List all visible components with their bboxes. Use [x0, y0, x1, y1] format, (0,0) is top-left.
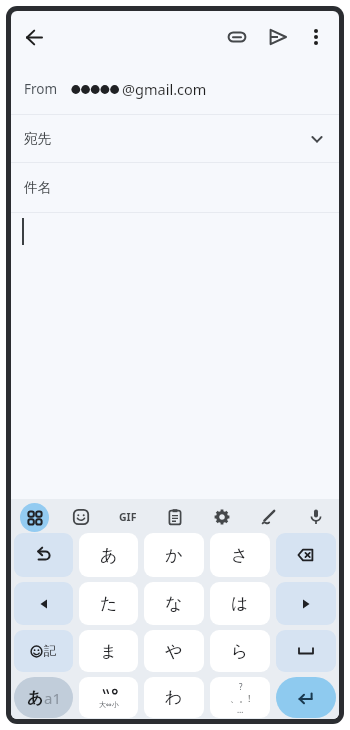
button[interactable]: [151, 501, 198, 533]
button[interactable]: わ: [144, 677, 204, 718]
staticText: 大⇔小: [99, 700, 119, 709]
button[interactable]: 記: [14, 630, 73, 672]
button[interactable]: [166, 508, 184, 526]
button[interactable]: [20, 503, 49, 532]
button[interactable]: [198, 501, 245, 533]
button[interactable]: [11, 213, 339, 499]
button[interactable]: 大⇔小: [79, 677, 138, 718]
button[interactable]: た: [79, 582, 138, 625]
staticText: …: [237, 704, 244, 715]
button[interactable]: [260, 508, 278, 526]
staticText: 宛先: [24, 130, 51, 147]
staticText: ら: [231, 641, 249, 662]
button[interactable]: [11, 501, 57, 533]
staticText: ま: [100, 641, 118, 662]
button[interactable]: [276, 533, 336, 577]
staticText: さ: [231, 545, 249, 566]
button[interactable]: [227, 27, 247, 47]
button[interactable]: ら: [210, 630, 270, 672]
button[interactable]: [276, 582, 336, 625]
staticText: は: [231, 593, 249, 614]
staticText: ?: [239, 681, 243, 692]
button[interactable]: 件名: [11, 163, 339, 212]
button[interactable]: [292, 501, 339, 533]
staticText: From: [24, 80, 58, 98]
staticText: あ: [100, 545, 118, 566]
button[interactable]: あ: [79, 533, 138, 577]
staticText: わ: [165, 687, 183, 708]
staticText: @gmail.com: [122, 79, 207, 99]
button[interactable]: [268, 27, 288, 47]
button[interactable]: か: [144, 533, 204, 577]
button[interactable]: [245, 501, 292, 533]
button[interactable]: 宛先: [11, 115, 339, 162]
button[interactable]: ?: [210, 677, 270, 718]
button[interactable]: [276, 630, 336, 672]
button[interactable]: [14, 582, 73, 625]
button[interactable]: [25, 28, 44, 47]
staticText: な: [165, 593, 183, 614]
button[interactable]: や: [144, 630, 204, 672]
staticText: GIF: [119, 510, 137, 524]
staticText: a1: [44, 688, 61, 708]
staticText: 件名: [24, 179, 51, 196]
button[interactable]: From: [11, 63, 339, 114]
button[interactable]: [306, 27, 326, 47]
staticText: た: [100, 593, 118, 614]
button[interactable]: [14, 533, 73, 577]
button[interactable]: [309, 131, 325, 147]
button[interactable]: ま: [79, 630, 138, 672]
button[interactable]: は: [210, 582, 270, 625]
staticText: か: [165, 545, 183, 566]
button[interactable]: さ: [210, 533, 270, 577]
staticText: あ: [27, 688, 44, 708]
button[interactable]: [72, 508, 90, 526]
staticText: 記: [44, 643, 57, 659]
button[interactable]: [213, 508, 231, 526]
button[interactable]: [276, 677, 336, 718]
button[interactable]: な: [144, 582, 204, 625]
staticText: や: [165, 641, 183, 662]
button[interactable]: [57, 501, 104, 533]
button[interactable]: あ: [14, 677, 73, 718]
staticText: 、。!: [230, 692, 251, 704]
button[interactable]: GIF: [104, 501, 151, 533]
button[interactable]: [307, 508, 325, 526]
